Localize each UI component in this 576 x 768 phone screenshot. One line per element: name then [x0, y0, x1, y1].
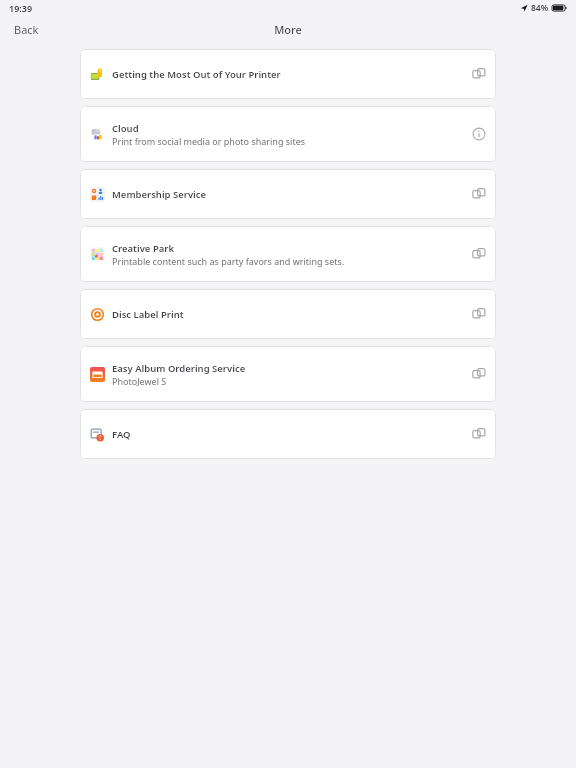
staticText: Disc Label Print	[112, 308, 184, 321]
button[interactable]: Creative Park	[80, 226, 496, 282]
staticText: Print from social media or photo sharing…	[112, 135, 306, 147]
button[interactable]: Cloud	[80, 106, 496, 162]
other: Open	[472, 247, 486, 261]
staticText: 84%	[531, 2, 549, 14]
button[interactable]: Back	[8, 19, 45, 40]
staticText: FAQ	[112, 428, 131, 441]
button[interactable]: Membership Service	[80, 169, 496, 219]
other: Information	[472, 127, 486, 141]
staticText: More	[274, 22, 302, 37]
staticText: Creative Park	[112, 242, 174, 255]
other: Open	[472, 307, 486, 321]
staticText: Getting the Most Out of Your Printer	[112, 68, 281, 81]
button[interactable]: Disc Label Print	[80, 289, 496, 339]
other: Open	[472, 427, 486, 441]
staticText: 19:39	[9, 2, 33, 14]
button[interactable]: Easy Album Ordering Service	[80, 346, 496, 402]
staticText: Membership Service	[112, 188, 207, 201]
other: Open	[472, 367, 486, 381]
staticText: PhotoJewel S	[112, 375, 167, 387]
button[interactable]: FAQ	[80, 409, 496, 459]
other: Open	[472, 67, 486, 81]
other: Open	[472, 187, 486, 201]
staticText: Back	[14, 22, 39, 37]
staticText: Printable content such as party favors a…	[112, 255, 345, 267]
staticText: Cloud	[112, 122, 139, 135]
staticText: Easy Album Ordering Service	[112, 362, 246, 375]
button[interactable]: Getting the Most Out of Your Printer	[80, 49, 496, 99]
